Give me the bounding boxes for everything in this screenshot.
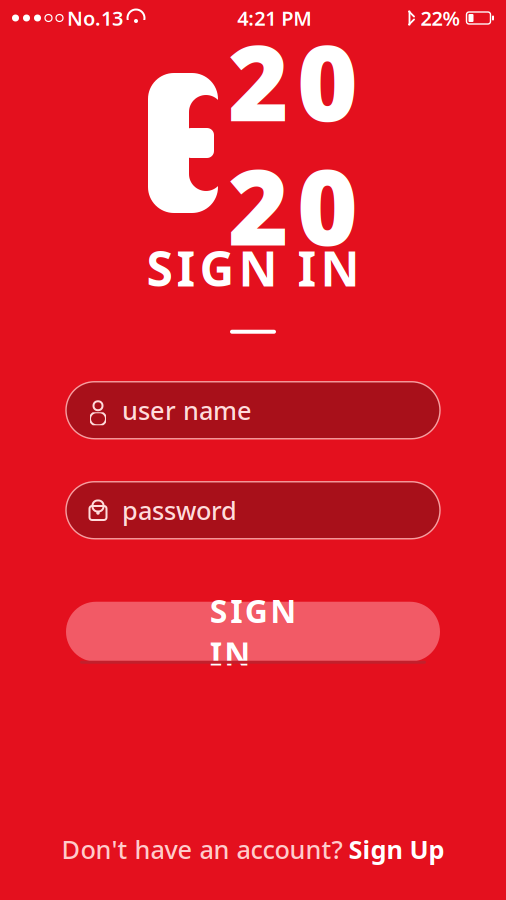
button[interactable]: user name: [66, 382, 440, 439]
staticText: SIGN IN: [210, 589, 296, 674]
staticText: 4:21 PM: [237, 5, 312, 31]
staticText: password: [122, 493, 237, 527]
button[interactable]: Don't have an account?: [41, 824, 464, 874]
staticText: 0: [297, 136, 358, 274]
staticText: Don't have an account?: [61, 832, 342, 866]
staticText: user name: [122, 393, 252, 427]
button[interactable]: SIGN IN: [66, 602, 440, 662]
staticText: 2: [228, 12, 289, 150]
button[interactable]: password: [66, 482, 440, 539]
staticText: 22%: [420, 5, 460, 31]
staticText: 2: [228, 136, 289, 274]
staticText: SIGN IN: [146, 236, 359, 300]
staticText: Sign Up: [348, 832, 444, 866]
staticText: 0: [297, 12, 358, 150]
staticText: No.13: [67, 5, 123, 31]
